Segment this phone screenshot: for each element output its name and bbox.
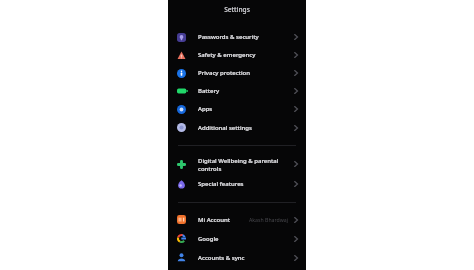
button[interactable]: Battery [168,82,306,100]
button[interactable]: Apps [168,100,306,118]
button[interactable]: Digital Wellbeing & parental controls [168,154,306,174]
button[interactable]: Additional settings [168,118,306,137]
staticText: Digital Wellbeing & parental controls [198,157,293,172]
staticText: Safety & emergency [198,51,293,59]
staticText: Passwords & security [198,33,293,41]
staticText: Apps [198,105,293,113]
button[interactable]: Safety & emergency [168,46,306,64]
button[interactable]: Accounts & sync [168,248,306,267]
staticText: Akash Bhardwaj [249,216,289,223]
button[interactable]: Google [168,229,306,248]
staticText: Settings [168,5,306,14]
staticText: Mi Account [198,216,249,224]
button[interactable]: Special features [168,174,306,194]
staticText: Accounts & sync [198,254,293,262]
button[interactable]: Mi Account [168,210,306,229]
staticText: Additional settings [198,124,293,132]
button[interactable]: Passwords & security [168,28,306,46]
button[interactable]: Privacy protection [168,64,306,82]
staticText: Battery [198,87,293,95]
staticText: Special features [198,180,293,188]
staticText: Privacy protection [198,69,293,77]
staticText: Google [198,235,293,243]
